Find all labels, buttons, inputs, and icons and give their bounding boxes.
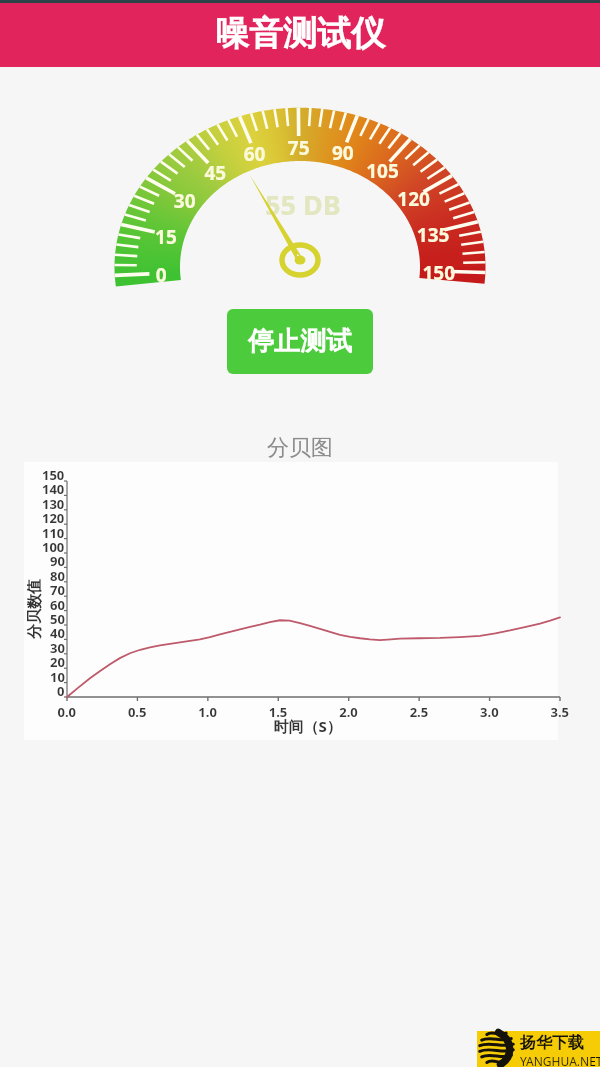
staticText: 扬华下载 [520, 1033, 584, 1053]
staticText: YANGHUA.NET [520, 1053, 600, 1067]
staticText: 分贝图 [267, 434, 333, 462]
staticText: 停止测试 [248, 325, 352, 358]
staticText: 噪音测试仪 [215, 12, 385, 55]
button[interactable]: 停止测试 [227, 309, 373, 374]
button[interactable]: 噪音测试仪 [0, 0, 600, 67]
